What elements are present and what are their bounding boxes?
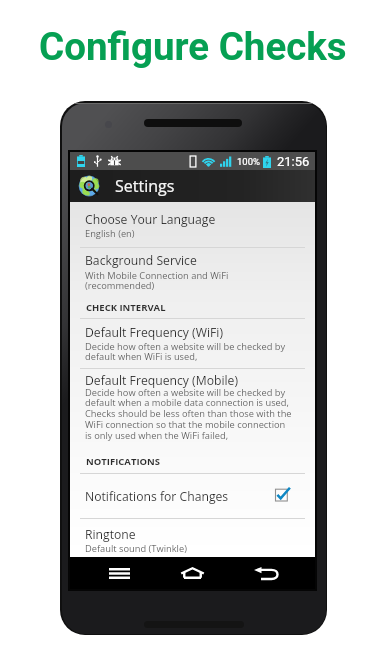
button[interactable] [70,249,315,294]
button[interactable] [70,321,315,368]
staticText: English (en) [85,227,135,240]
button[interactable] [70,520,315,557]
staticText: Decide how often a website will be check… [85,386,292,442]
staticText: CHECK INTERVAL [86,301,166,314]
button[interactable]: Notifications for Changes [70,478,315,514]
button[interactable] [70,369,315,442]
staticText: Default Frequency (WiFi) [85,324,223,341]
button[interactable] [70,207,315,246]
staticText: Configure Checks [39,24,347,68]
staticText: 100% [237,156,260,167]
button[interactable]: Settings [70,170,315,202]
staticText: NOTIFICATIONS [86,455,161,468]
staticText: Notifications for Changes [85,488,229,505]
button[interactable]: Recent apps [97,557,142,589]
staticText: Ringtone [85,526,136,543]
staticText: Settings [115,175,175,197]
staticText: Default sound (Twinkle) [85,542,187,555]
button[interactable]: Back [244,557,289,589]
button[interactable]: Home [170,557,215,589]
staticText: Background Service [85,252,197,269]
staticText: With Mobile Connection and WiFi (recomme… [85,269,229,292]
staticText: 21:56 [277,154,310,169]
staticText: Default Frequency (Mobile) [85,372,239,389]
staticText: Choose Your Language [85,211,216,228]
staticText: Decide how often a website will be check… [85,340,286,363]
